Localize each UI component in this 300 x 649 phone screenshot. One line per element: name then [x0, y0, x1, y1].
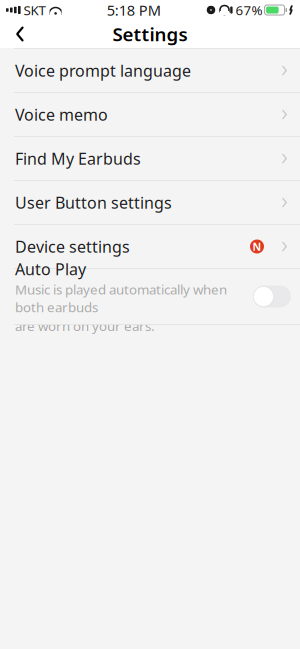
staticText: Voice prompt language: [15, 60, 191, 81]
button[interactable]: Voice memo: [0, 93, 300, 136]
staticText: Voice memo: [15, 104, 108, 125]
staticText: 67%: [236, 1, 263, 19]
staticText: are worn on your ears.: [15, 317, 155, 335]
button[interactable]: Auto Play: [253, 285, 291, 307]
button[interactable]: Find My Earbuds: [0, 137, 300, 180]
staticText: Music is played automatically when both …: [15, 281, 227, 316]
staticText: Settings: [112, 22, 187, 46]
staticText: SKT: [24, 1, 46, 19]
staticText: 5:18 PM: [107, 0, 161, 20]
staticText: Find My Earbuds: [15, 148, 141, 169]
button[interactable]: Device settings: [0, 225, 300, 268]
staticText: User Button settings: [15, 192, 172, 213]
staticText: Auto Play: [15, 258, 86, 279]
staticText: N: [252, 239, 261, 254]
button[interactable]: Voice prompt language: [0, 49, 300, 92]
button[interactable]: Back: [0, 20, 40, 48]
staticText: Device settings: [15, 236, 130, 257]
button[interactable]: User Button settings: [0, 181, 300, 224]
